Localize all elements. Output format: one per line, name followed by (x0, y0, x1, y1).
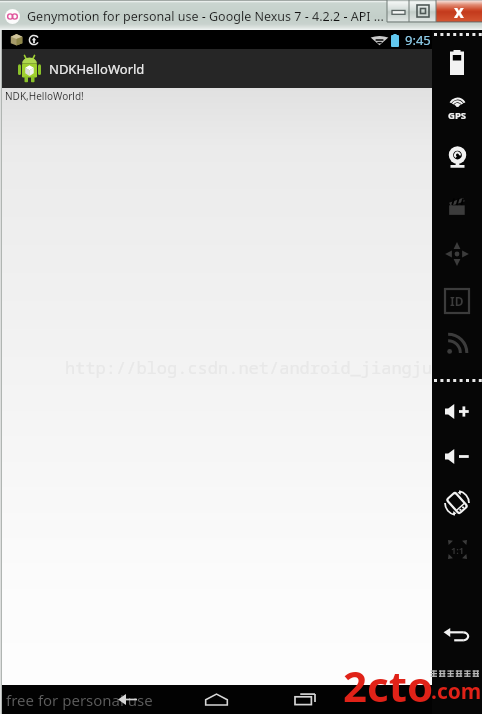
button[interactable]: Dpad (432, 229, 482, 279)
button[interactable]: Recents (279, 685, 331, 714)
button[interactable]: Back (432, 611, 482, 661)
button[interactable]: Zoom 1 to 1 (432, 524, 482, 574)
button[interactable]: NDKHelloWorld (2, 49, 432, 88)
button[interactable]: GPS (432, 84, 482, 134)
staticText: GPS (448, 109, 467, 122)
button[interactable]: Identifiers (432, 276, 482, 326)
button[interactable]: Home (190, 685, 242, 714)
staticText: free for personal use (6, 690, 153, 710)
staticText: ID (450, 293, 464, 309)
button[interactable]: Video recording (432, 181, 482, 231)
button[interactable]: Back (101, 685, 153, 714)
button[interactable]: Network (432, 319, 482, 369)
button[interactable]: Close (436, 0, 482, 22)
button[interactable]: Minimize (387, 0, 409, 22)
button[interactable]: Volume up (432, 386, 482, 436)
staticText: .com (431, 677, 482, 706)
staticText: Genymotion for personal use - Google Nex… (27, 8, 384, 25)
button[interactable]: Maximize (409, 0, 436, 22)
button[interactable]: App icon (4, 8, 21, 25)
staticText: 1:1 (451, 544, 464, 556)
staticText: NDKHelloWorld (49, 60, 145, 78)
button[interactable]: Camera (432, 132, 482, 182)
button[interactable]: Battery (432, 37, 482, 87)
button[interactable]: Volume down (432, 431, 482, 481)
staticText: 9:45 (405, 31, 431, 49)
staticText: x (454, 0, 464, 22)
staticText: 2cto (343, 657, 434, 709)
staticText: NDK,HelloWorld! (5, 89, 84, 103)
staticText: http://blog.csdn.net/android_jiangjun (65, 356, 443, 379)
button[interactable]: Rotate (432, 478, 482, 528)
